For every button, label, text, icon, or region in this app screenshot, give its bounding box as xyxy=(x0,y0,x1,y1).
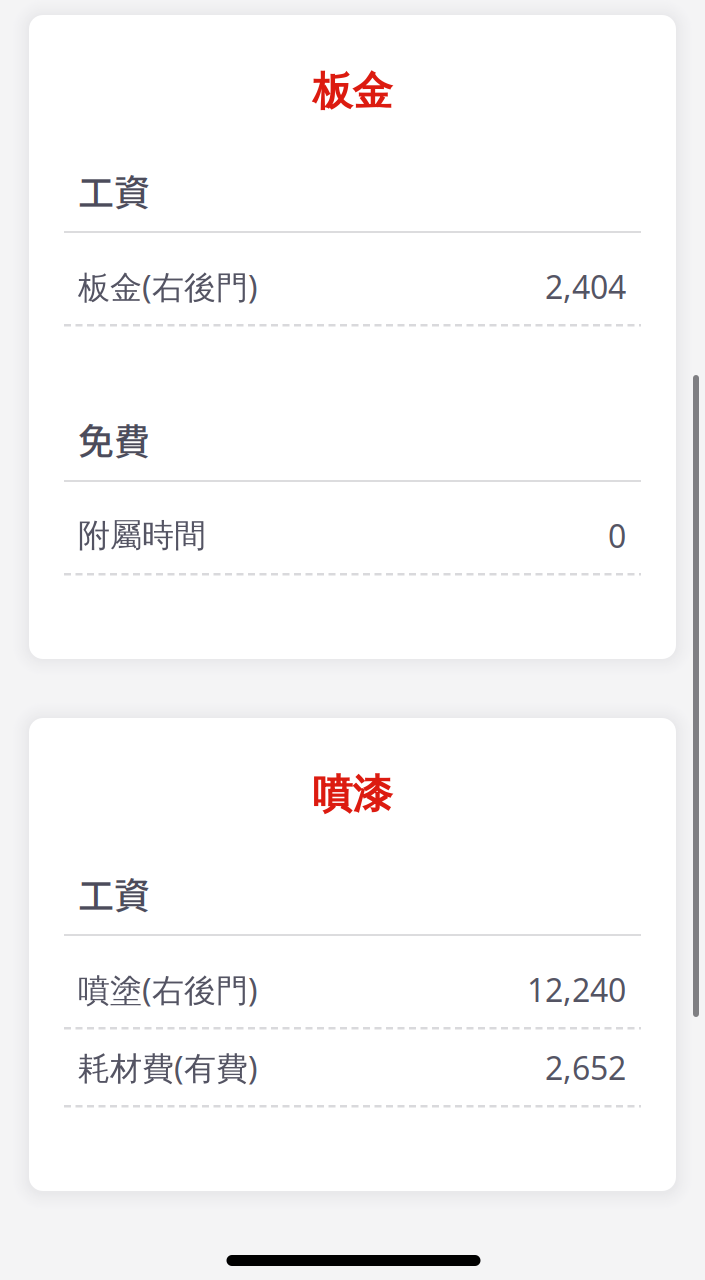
staticText: 板金 xyxy=(312,67,392,116)
staticText: 免費 xyxy=(78,413,150,465)
staticText: 噴漆 xyxy=(312,770,392,819)
button[interactable]: 耗材費(有費) xyxy=(29,1046,676,1088)
button[interactable]: 板金(右後門) xyxy=(29,265,676,307)
staticText: 0 xyxy=(608,514,626,557)
staticText: 耗材費(有費) xyxy=(78,1046,258,1089)
staticText: 工資 xyxy=(78,164,150,216)
staticText: 噴塗(右後門) xyxy=(78,968,258,1011)
staticText: 2,652 xyxy=(545,1046,626,1089)
staticText: 附屬時間 xyxy=(78,516,206,555)
staticText: 板金(右後門) xyxy=(78,265,258,308)
staticText: 2,404 xyxy=(545,265,626,308)
staticText: 工資 xyxy=(78,867,150,919)
staticText: 12,240 xyxy=(527,968,626,1011)
button[interactable]: 噴塗(右後門) xyxy=(29,968,676,1010)
button[interactable]: 附屬時間 xyxy=(29,514,676,556)
